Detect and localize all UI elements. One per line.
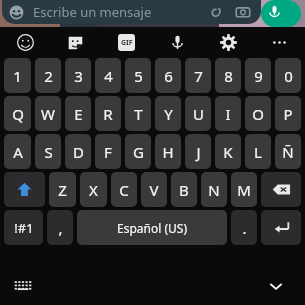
- staticText: 0: [284, 66, 293, 86]
- button[interactable]: 9: [245, 58, 271, 93]
- button[interactable]: C: [111, 172, 137, 207]
- button[interactable]: 0: [275, 58, 301, 93]
- staticText: N: [208, 180, 220, 200]
- staticText: 1: [13, 66, 22, 86]
- button[interactable]: W: [35, 96, 61, 131]
- staticText: !#1: [14, 219, 34, 237]
- staticText: S: [44, 142, 53, 162]
- button[interactable]: Z: [49, 172, 76, 207]
- button[interactable]: M: [231, 172, 257, 207]
- staticText: Q: [12, 104, 24, 124]
- staticText: W: [41, 104, 55, 124]
- staticText: 3: [74, 66, 83, 86]
- button[interactable]: B: [171, 172, 197, 207]
- staticText: E: [74, 104, 83, 124]
- staticText: 4: [104, 66, 113, 86]
- staticText: B: [179, 180, 189, 200]
- staticText: K: [223, 142, 233, 162]
- button[interactable]: N: [201, 172, 227, 207]
- staticText: 7: [194, 66, 203, 86]
- button[interactable]: More options: [254, 27, 305, 58]
- button[interactable]: .: [231, 210, 257, 245]
- button[interactable]: Switch keyboard: [8, 271, 38, 301]
- staticText: R: [103, 104, 113, 124]
- button[interactable]: K: [215, 134, 241, 169]
- button[interactable]: T: [125, 96, 151, 131]
- staticText: V: [149, 180, 159, 200]
- staticText: 9: [254, 66, 263, 86]
- button[interactable]: !#1: [4, 210, 43, 245]
- button[interactable]: G: [125, 134, 151, 169]
- staticText: D: [73, 142, 84, 162]
- button[interactable]: U: [185, 96, 211, 131]
- button[interactable]: Settings: [203, 27, 254, 58]
- staticText: U: [193, 104, 204, 124]
- staticText: GIF: [121, 38, 133, 48]
- staticText: ,: [58, 218, 63, 238]
- button[interactable]: Ñ: [275, 134, 301, 169]
- button[interactable]: P: [275, 96, 301, 131]
- button[interactable]: 6: [155, 58, 181, 93]
- staticText: Español (US): [117, 220, 187, 236]
- staticText: I: [225, 104, 231, 124]
- button[interactable]: D: [65, 134, 91, 169]
- other: Emoji: [9, 5, 24, 20]
- button[interactable]: O: [245, 96, 271, 131]
- button[interactable]: Stickers: [50, 27, 101, 58]
- button[interactable]: I: [215, 96, 241, 131]
- button[interactable]: Emoji: [0, 27, 50, 58]
- button[interactable]: E: [65, 96, 91, 131]
- staticText: O: [252, 104, 264, 124]
- button[interactable]: 5: [125, 58, 151, 93]
- button[interactable]: 4: [95, 58, 121, 93]
- staticText: Escribe un mensaje: [33, 3, 152, 21]
- staticText: .: [242, 218, 247, 238]
- button[interactable]: GIF: [101, 27, 152, 58]
- button[interactable]: Emoji: [2, 0, 261, 24]
- staticText: X: [89, 180, 98, 200]
- staticText: H: [162, 142, 174, 162]
- staticText: 6: [164, 66, 173, 86]
- staticText: 2: [44, 66, 53, 86]
- button[interactable]: A: [4, 134, 31, 169]
- staticText: 5: [134, 66, 143, 86]
- staticText: A: [13, 142, 23, 162]
- staticText: J: [196, 142, 201, 162]
- staticText: Z: [58, 180, 67, 200]
- button[interactable]: Backspace: [261, 172, 301, 207]
- button[interactable]: R: [95, 96, 121, 131]
- button[interactable]: F: [95, 134, 121, 169]
- staticText: L: [254, 142, 262, 162]
- staticText: M: [237, 180, 251, 200]
- button[interactable]: L: [245, 134, 271, 169]
- staticText: Y: [164, 104, 173, 124]
- button[interactable]: H: [155, 134, 181, 169]
- button[interactable]: Español (US): [77, 210, 227, 245]
- button[interactable]: Q: [4, 96, 31, 131]
- button[interactable]: X: [80, 172, 107, 207]
- button[interactable]: 1: [4, 58, 31, 93]
- staticText: 8: [224, 66, 233, 86]
- other: Attach: [207, 4, 223, 20]
- button[interactable]: S: [35, 134, 61, 169]
- button[interactable]: Enter: [261, 210, 301, 245]
- button[interactable]: 3: [65, 58, 91, 93]
- staticText: Ñ: [282, 142, 294, 162]
- button[interactable]: 2: [35, 58, 61, 93]
- button[interactable]: V: [141, 172, 167, 207]
- staticText: P: [283, 104, 293, 124]
- button[interactable]: Voice input: [152, 27, 203, 58]
- button[interactable]: 8: [215, 58, 241, 93]
- button[interactable]: 7: [185, 58, 211, 93]
- button[interactable]: Y: [155, 96, 181, 131]
- staticText: G: [133, 142, 144, 162]
- button[interactable]: J: [185, 134, 211, 169]
- button[interactable]: Shift: [4, 172, 45, 207]
- other: Camera: [235, 4, 251, 20]
- button[interactable]: ,: [47, 210, 73, 245]
- staticText: F: [104, 142, 112, 162]
- staticText: C: [119, 180, 129, 200]
- staticText: T: [134, 104, 143, 124]
- button[interactable]: Voice message: [261, 0, 301, 27]
- button[interactable]: Hide keyboard: [261, 271, 291, 301]
